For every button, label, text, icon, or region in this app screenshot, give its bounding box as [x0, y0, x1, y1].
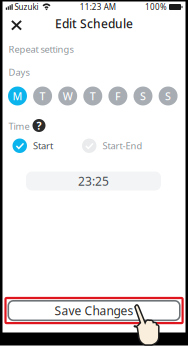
staticText: S — [165, 89, 171, 103]
button[interactable]: S — [133, 86, 152, 105]
staticText: W — [63, 89, 73, 103]
button[interactable]: Help — [32, 119, 45, 132]
staticText: S — [140, 89, 146, 103]
button[interactable]: T — [83, 86, 102, 105]
staticText: Days — [8, 66, 29, 78]
button[interactable]: S — [159, 86, 178, 105]
staticText: Start — [33, 140, 53, 152]
staticText: Repeat settings — [8, 43, 73, 55]
button[interactable]: F — [108, 86, 127, 105]
button[interactable]: Close — [6, 15, 27, 35]
button[interactable]: Start — [12, 138, 53, 153]
button[interactable]: T — [33, 86, 52, 105]
staticText: F — [115, 89, 121, 103]
staticText: ? — [36, 118, 41, 133]
staticText: Time — [8, 120, 29, 132]
staticText: Start-End — [102, 140, 142, 152]
button[interactable]: Save Changes — [5, 298, 183, 323]
staticText: 23:25 — [78, 173, 109, 189]
button[interactable]: M — [8, 86, 27, 105]
staticText: T — [90, 89, 96, 103]
staticText: Edit Schedule — [55, 15, 133, 31]
staticText: Suzuki — [14, 2, 38, 12]
button[interactable]: 23:25 — [26, 171, 161, 190]
staticText: T — [40, 89, 46, 103]
staticText: 11:23 AM — [80, 2, 116, 12]
button[interactable]: W — [58, 86, 77, 105]
staticText: Save Changes — [54, 303, 133, 318]
button[interactable]: Start-End — [82, 138, 142, 153]
staticText: M — [12, 89, 22, 103]
staticText: 100% — [145, 2, 167, 12]
